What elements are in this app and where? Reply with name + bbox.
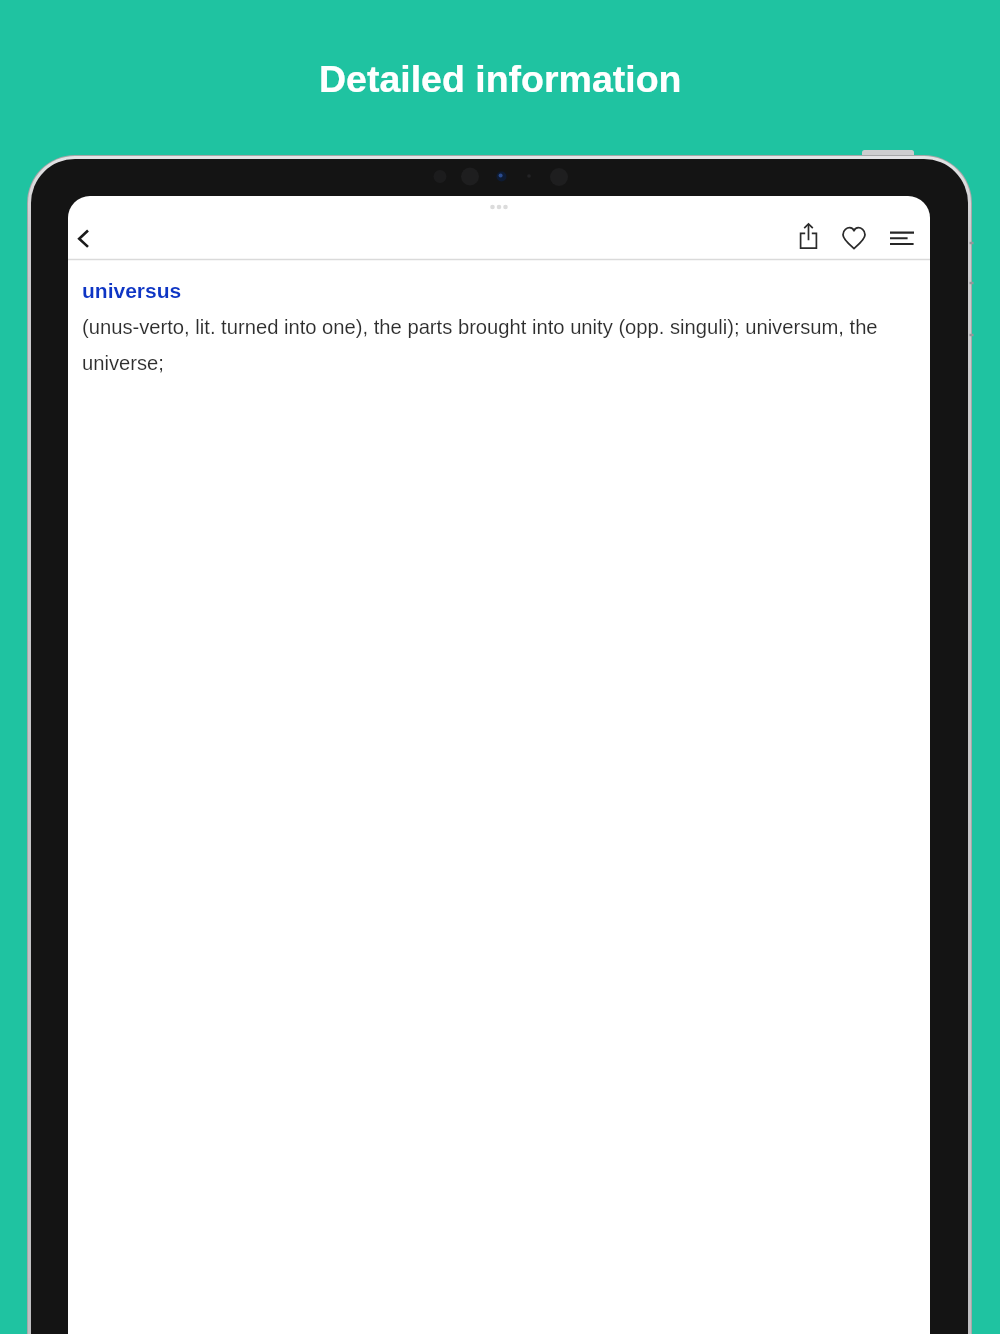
button[interactable] xyxy=(787,216,831,260)
staticText: (unus-verto, lit. turned into one), the … xyxy=(82,316,878,339)
button[interactable] xyxy=(68,217,112,261)
staticText: Detailed information xyxy=(319,58,682,100)
button[interactable] xyxy=(880,216,924,260)
button[interactable] xyxy=(832,217,876,261)
button[interactable]: universus xyxy=(82,279,182,302)
staticText: universe; xyxy=(82,352,164,375)
